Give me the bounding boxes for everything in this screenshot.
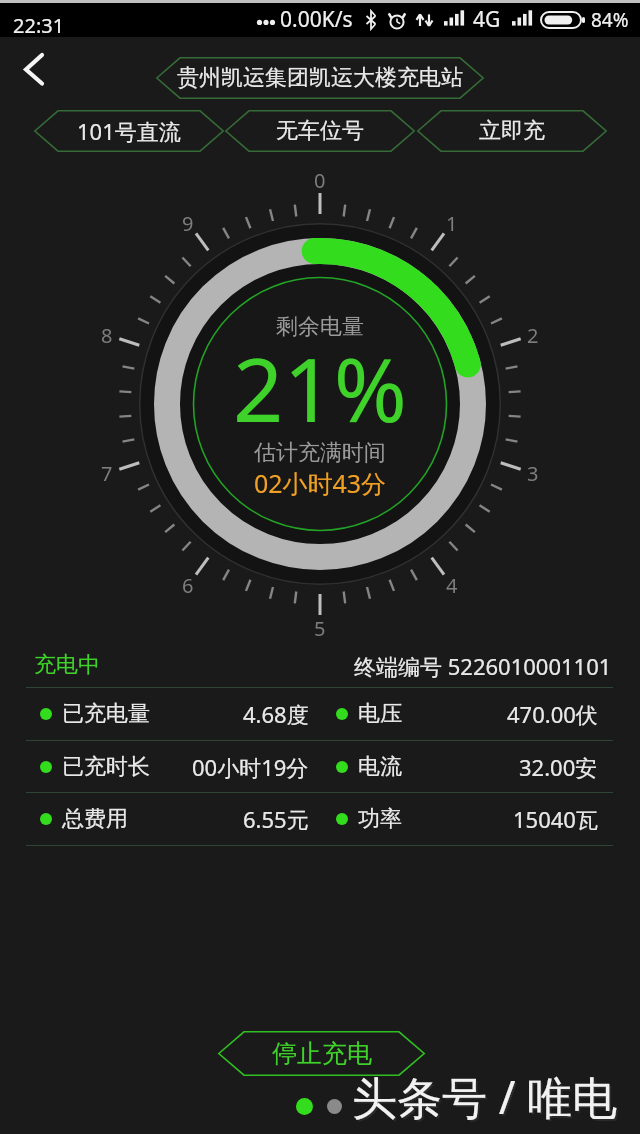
button[interactable]: 贵州凯运集团凯运大楼充电站 [156, 57, 484, 99]
staticText: 0.00K/s [280, 5, 353, 34]
staticText: 6.55元 [243, 804, 309, 834]
staticText: 00小时19分 [192, 752, 309, 782]
button[interactable]: 功率 [336, 793, 598, 845]
staticText: 4.68度 [243, 699, 309, 729]
staticText: 22:31 [13, 12, 65, 39]
staticText: 84% [591, 7, 629, 33]
staticText: 充电中 [34, 651, 100, 679]
staticText: 32.00安 [519, 752, 598, 782]
staticText: 总费用 [62, 805, 128, 833]
button[interactable]: 停止充电 [218, 1031, 425, 1076]
staticText: 0 [314, 167, 326, 194]
staticText: 电流 [358, 753, 402, 781]
button[interactable]: 电压 [336, 688, 598, 740]
staticText: 无车位号 [276, 117, 364, 145]
staticText: 头条号 / 唯电 [352, 1066, 618, 1127]
staticText: 头条号 / 唯电 [354, 1068, 620, 1129]
staticText: 5 [314, 615, 326, 642]
staticText: 15040瓦 [513, 804, 598, 834]
button[interactable]: Back [10, 45, 58, 93]
button[interactable]: 总费用 [40, 793, 309, 845]
button[interactable]: 已充时长 [40, 741, 309, 792]
staticText: 6 [182, 572, 194, 599]
staticText: 已充时长 [62, 753, 150, 781]
staticText: 估计充满时间 [120, 439, 520, 467]
staticText: 立即充 [479, 117, 545, 145]
staticText: 21% [120, 328, 520, 448]
staticText: 8 [101, 322, 113, 349]
staticText: 7 [101, 460, 113, 487]
staticText: 1 [446, 210, 458, 237]
button[interactable]: 电流 [336, 741, 598, 792]
staticText: 101号直流 [77, 116, 181, 146]
button[interactable]: 无车位号 [225, 110, 415, 152]
staticText: 470.00伏 [507, 699, 598, 729]
staticText: 剩余电量 [120, 313, 520, 341]
button[interactable]: 101号直流 [34, 110, 224, 152]
staticText: 电压 [358, 700, 402, 728]
staticText: 功率 [358, 805, 402, 833]
staticText: 3 [527, 460, 539, 487]
staticText: 贵州凯运集团凯运大楼充电站 [177, 64, 463, 92]
staticText: 4G [473, 5, 501, 34]
staticText: 2 [527, 322, 539, 349]
staticText: 9 [182, 210, 194, 237]
button[interactable]: 已充电量 [40, 688, 309, 740]
staticText: 终端编号 5226010001101 [354, 651, 612, 681]
staticText: 4 [446, 572, 458, 599]
staticText: 02小时43分 [120, 466, 520, 500]
staticText: 停止充电 [272, 1038, 372, 1069]
button[interactable]: 立即充 [417, 110, 607, 152]
staticText: 已充电量 [62, 700, 150, 728]
